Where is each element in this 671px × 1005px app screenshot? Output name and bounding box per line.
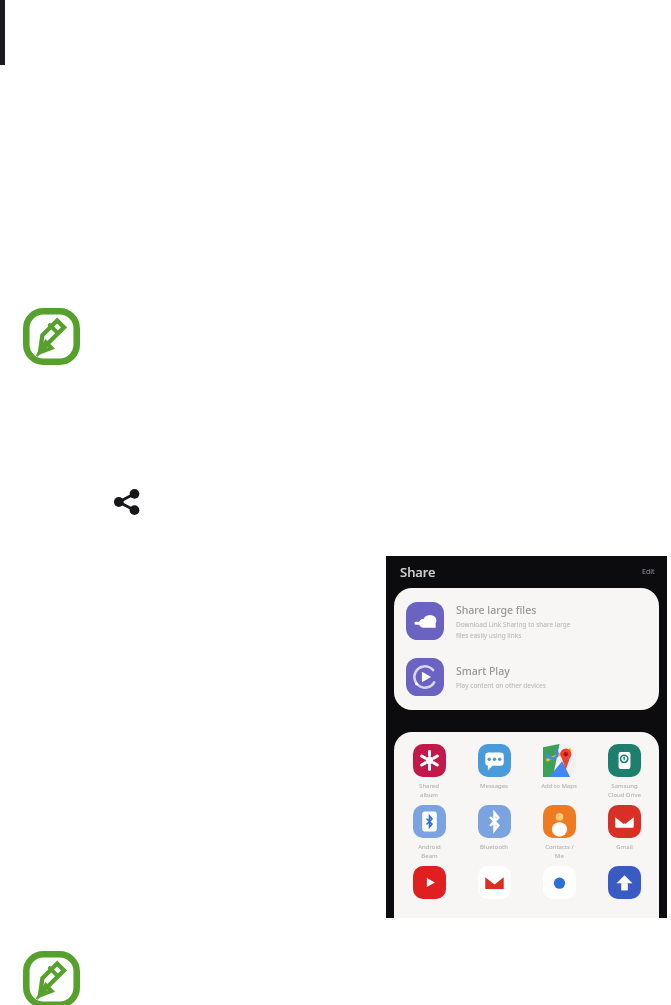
staticText: album: [420, 791, 438, 799]
staticText: Bluetooth: [480, 843, 508, 851]
button[interactable]: Note: [23, 951, 80, 1005]
staticText: Edit: [642, 567, 655, 577]
button[interactable]: Shared: [399, 744, 459, 799]
staticText: Play content on other devices: [456, 681, 546, 690]
button[interactable]: Note: [23, 308, 80, 365]
staticText: Contacts /: [545, 843, 574, 851]
button[interactable]: Edit: [642, 567, 655, 577]
button[interactable]: [464, 866, 524, 899]
button[interactable]: Messages: [464, 744, 524, 790]
staticText: Me: [555, 852, 564, 860]
button[interactable]: Smart Play: [394, 654, 659, 700]
staticText: Beam: [421, 852, 438, 860]
staticText: Android: [418, 843, 441, 851]
staticText: Cloud Drive: [608, 791, 641, 799]
staticText: Download Link Sharing to share large: [456, 620, 571, 629]
button[interactable]: [529, 866, 589, 899]
button[interactable]: Samsung: [594, 744, 654, 799]
staticText: Add to Maps: [541, 782, 577, 790]
staticText: files easily using links: [456, 631, 522, 640]
staticText: Gmail: [616, 843, 633, 851]
staticText: Samsung: [611, 782, 638, 790]
staticText: Shared: [419, 782, 439, 790]
button[interactable]: Share large files: [394, 598, 659, 644]
staticText: Smart Play: [456, 664, 510, 678]
button[interactable]: Contacts /: [529, 805, 589, 860]
staticText: Messages: [480, 782, 508, 790]
button[interactable]: Android: [399, 805, 459, 860]
staticText: Share large files: [456, 603, 537, 617]
button[interactable]: Add to Maps: [529, 744, 589, 790]
button[interactable]: Gmail: [594, 805, 654, 851]
button[interactable]: [399, 866, 459, 899]
button[interactable]: Bluetooth: [464, 805, 524, 851]
button[interactable]: [594, 866, 654, 899]
staticText: Share: [400, 563, 436, 581]
button[interactable]: Share: [110, 485, 144, 519]
